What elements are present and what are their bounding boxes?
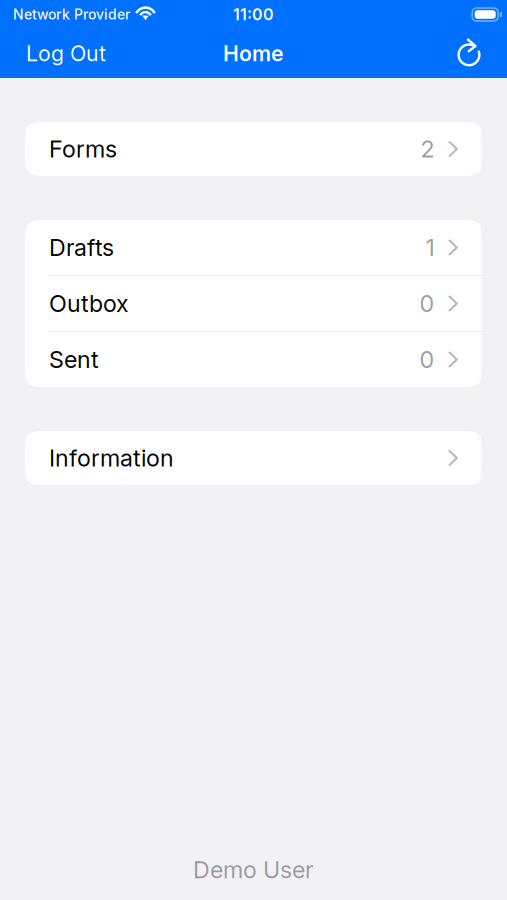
button[interactable]: Drafts — [25, 220, 482, 275]
staticText: Information — [49, 444, 174, 472]
staticText: 0 — [419, 289, 434, 318]
button[interactable]: Log Out — [0, 29, 124, 78]
staticText: Demo User — [193, 856, 314, 884]
staticText: Drafts — [49, 233, 114, 262]
staticText: Outbox — [49, 289, 129, 318]
staticText: Forms — [49, 135, 117, 163]
button[interactable]: Information — [25, 431, 482, 485]
button[interactable]: Sent — [25, 332, 482, 387]
staticText: Home — [223, 41, 284, 66]
button[interactable]: Refresh — [436, 29, 507, 78]
button[interactable]: Outbox — [25, 276, 482, 331]
staticText: Sent — [49, 345, 99, 374]
staticText: 11:00 — [233, 5, 274, 24]
staticText: 1 — [425, 233, 434, 262]
staticText: 2 — [420, 135, 434, 163]
staticText: Network Provider — [13, 6, 130, 23]
staticText: Log Out — [26, 41, 106, 66]
staticText: 0 — [419, 345, 434, 374]
button[interactable]: Forms — [25, 122, 482, 176]
